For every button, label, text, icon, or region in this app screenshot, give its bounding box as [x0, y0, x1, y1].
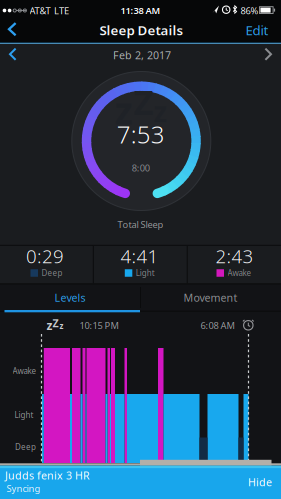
staticText: 2:43 [215, 244, 253, 268]
button[interactable]: Hide [242, 471, 278, 493]
staticText: z [59, 321, 63, 331]
button[interactable]: Edit [240, 19, 274, 41]
staticText: Feb 2, 2017 [113, 48, 171, 62]
staticText: Levels [54, 290, 85, 305]
staticText: z [153, 93, 167, 130]
button[interactable]: Next day [259, 45, 277, 63]
staticText: Syncing [6, 482, 40, 494]
staticText: Z [133, 78, 153, 124]
staticText: 7:53 [117, 118, 165, 150]
staticText: Sleep Details [99, 21, 183, 39]
staticText: 86% [240, 4, 258, 17]
staticText: z [114, 85, 132, 135]
staticText: Movement [183, 290, 237, 305]
staticText: Deep [15, 442, 36, 452]
staticText: Awake [12, 366, 36, 376]
staticText: 10:15 PM [79, 319, 118, 332]
staticText: 6:08 AM [200, 319, 234, 332]
staticText: z [46, 317, 52, 333]
staticText: Light [136, 268, 155, 278]
button[interactable]: Previous day [4, 45, 22, 63]
button[interactable]: Levels [2, 285, 138, 310]
staticText: Hide [248, 475, 272, 489]
staticText: Total Sleep [117, 218, 163, 231]
staticText: 4:41 [120, 244, 158, 268]
staticText: Awake [227, 268, 251, 278]
staticText: Z [52, 316, 58, 330]
staticText: Deep [41, 268, 62, 278]
staticText: 8:00 [132, 162, 150, 174]
staticText: Light [14, 410, 33, 420]
staticText: LTE [54, 4, 69, 17]
button[interactable]: Back [2, 19, 22, 39]
staticText: Judds fenix 3 HR [5, 468, 90, 482]
staticText: Edit [245, 21, 268, 39]
button[interactable]: Movement [142, 285, 278, 310]
staticText: 0:29 [26, 244, 64, 268]
staticText: 11:38 AM [120, 4, 160, 17]
staticText: AT&T [29, 4, 50, 17]
